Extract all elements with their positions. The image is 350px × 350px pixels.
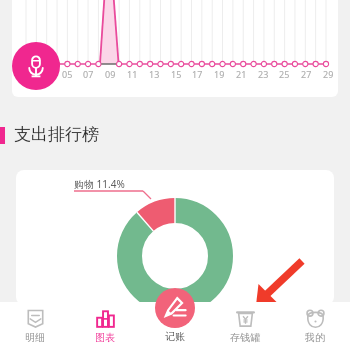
staticText: 29 — [323, 68, 334, 80]
button[interactable]: 记账 — [155, 288, 195, 328]
button[interactable]: 存钱罐 — [210, 302, 280, 350]
button[interactable]: 明细 — [0, 302, 70, 350]
staticText: 图表 — [95, 331, 115, 344]
staticText: 我的 — [305, 331, 325, 344]
staticText: 明细 — [25, 331, 45, 344]
staticText: 13 — [149, 68, 160, 80]
staticText: 11 — [127, 68, 138, 80]
staticText: 存钱罐 — [230, 331, 260, 344]
staticText: 01 — [18, 68, 29, 80]
button[interactable]: Voice input — [12, 42, 60, 90]
staticText: 03 — [40, 68, 51, 80]
staticText: 15 — [171, 68, 182, 80]
staticText: 05 — [62, 68, 73, 80]
staticText: 07 — [83, 68, 94, 80]
button[interactable]: 图表 — [70, 302, 140, 350]
staticText: 记账 — [165, 330, 185, 343]
staticText: 27 — [301, 68, 312, 80]
staticText: 21 — [236, 68, 247, 80]
staticText: 09 — [105, 68, 116, 80]
staticText: 23 — [258, 68, 269, 80]
button[interactable]: 我的 — [280, 302, 350, 350]
staticText: 17 — [192, 68, 203, 80]
staticText: 25 — [279, 68, 290, 80]
staticText: 购物 11.4% — [74, 177, 125, 191]
staticText: 19 — [214, 68, 225, 80]
staticText: 支出排行榜 — [14, 124, 99, 145]
